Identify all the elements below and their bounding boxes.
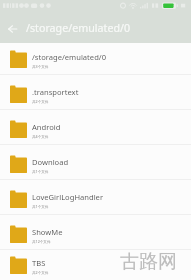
button[interactable]: .transportext (0, 75, 191, 110)
button[interactable]: LoveGirlLogHandler (0, 180, 191, 215)
button[interactable]: TBS (0, 250, 191, 277)
staticText: 共12个文件 (32, 239, 51, 244)
staticText: 共1个文件 (32, 169, 49, 174)
button[interactable]: ShowMe (0, 215, 191, 250)
staticText: LoveGirlLogHandler (32, 192, 104, 202)
staticText: 共2个文件 (32, 99, 49, 104)
staticText: Android (32, 122, 61, 132)
staticText: 古路网 (120, 250, 177, 274)
button[interactable]: Download (0, 145, 191, 180)
staticText: /storage/emulated/0 (32, 52, 106, 62)
staticText: .transportext (32, 87, 79, 97)
staticText: 共1个文件 (32, 204, 49, 209)
button[interactable]: /storage/emulated/0 (0, 40, 191, 75)
button[interactable]: Android (0, 110, 191, 145)
staticText: 共3个文件 (32, 64, 49, 69)
staticText: ShowMe (32, 227, 63, 237)
staticText: 共2个文件 (32, 270, 49, 275)
staticText: 共4个文件 (32, 134, 49, 139)
staticText: Download (32, 157, 69, 167)
button[interactable]: Back (0, 12, 24, 43)
staticText: TBS (32, 258, 46, 268)
staticText: /storage/emulated/0 (26, 21, 131, 36)
